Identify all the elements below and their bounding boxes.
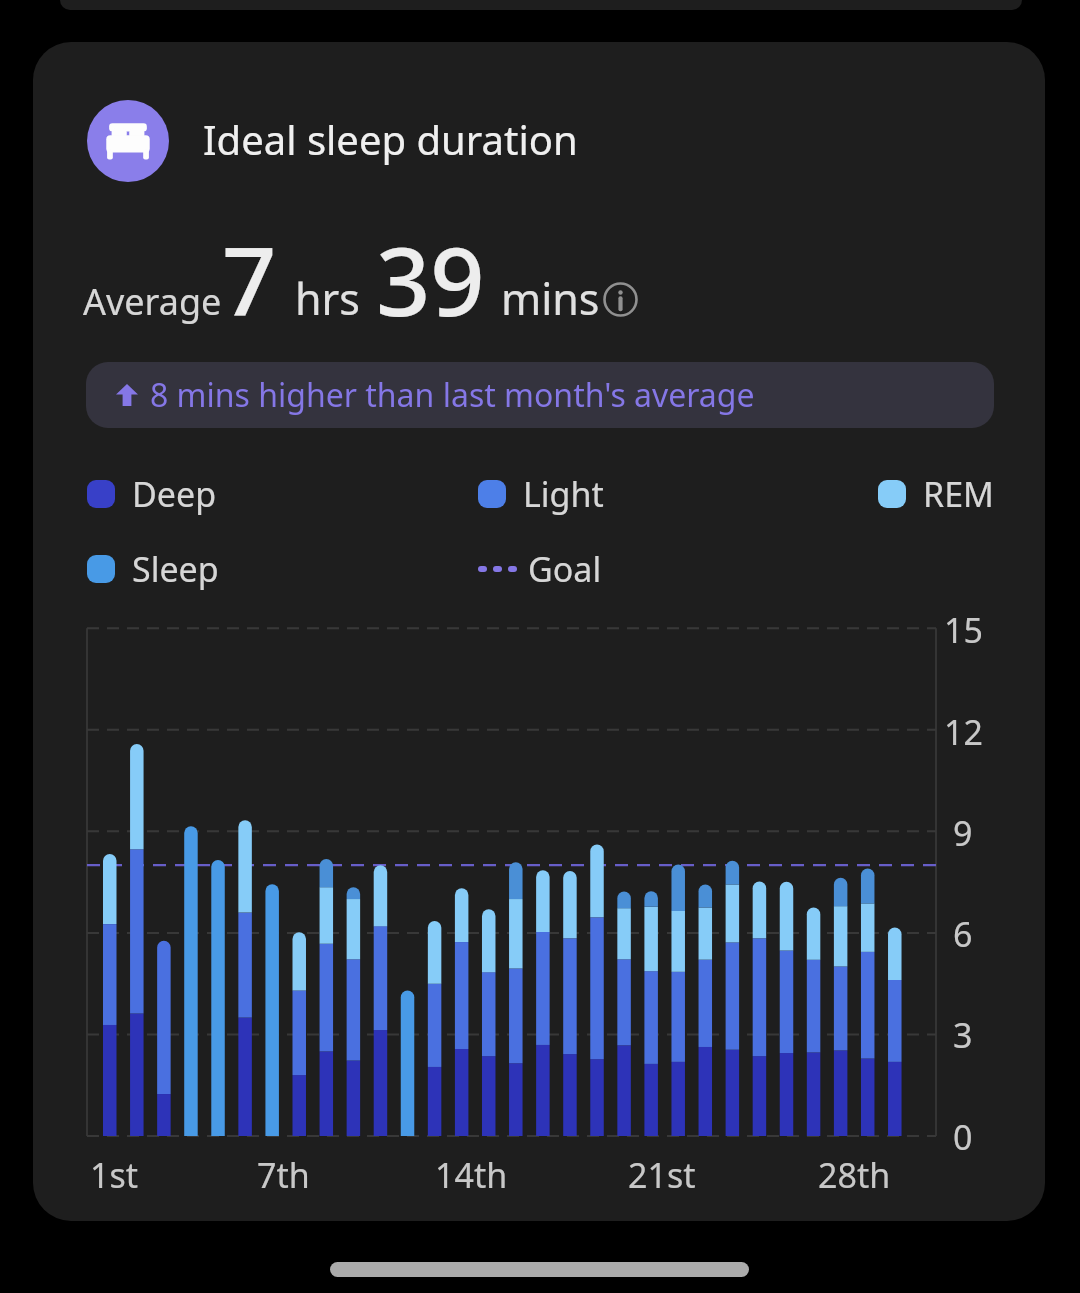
staticText: Light [523,471,604,517]
staticText: 3 [953,1012,973,1056]
button[interactable] [87,100,169,182]
staticText: 1st [90,1152,139,1196]
staticText: 8 mins higher than last month's average [150,373,755,417]
staticText: 6 [953,911,973,955]
button[interactable] [330,1262,749,1277]
staticText: 14th [435,1152,508,1196]
staticText: Deep [132,471,217,517]
staticText: 15 [944,607,983,651]
staticText: 39 [376,214,485,343]
staticText: 9 [953,810,973,854]
button[interactable]: Deep [87,471,217,517]
staticText: Ideal sleep duration [203,112,578,166]
staticText: 7 [222,214,277,343]
staticText: mins [501,269,600,328]
staticText: 7th [257,1152,310,1196]
button[interactable]: REM [878,471,994,517]
staticText: Average [83,277,222,326]
staticText: Goal [528,546,602,592]
button[interactable]: Light [478,471,604,517]
staticText: 21st [628,1152,696,1196]
button[interactable]: Goal [478,546,602,592]
staticText: hrs [295,269,360,328]
staticText: 12 [944,709,983,753]
staticText: REM [923,471,994,517]
staticText: 28th [818,1152,891,1196]
button[interactable]: Sleep [87,546,219,592]
button[interactable] [603,282,638,317]
staticText: 0 [953,1114,973,1158]
button[interactable]: 8 mins higher than last month's average [86,362,994,428]
staticText: Sleep [132,546,219,592]
